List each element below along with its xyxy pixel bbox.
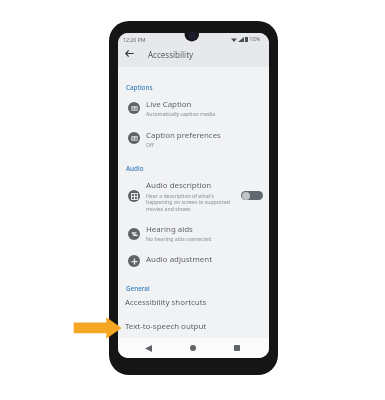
staticText: Audio adjustment (146, 254, 213, 265)
staticText: Audio (126, 164, 144, 173)
staticText: Live Caption (146, 99, 192, 110)
button[interactable]: Navigate up (121, 45, 138, 62)
staticText: Automatically caption media (146, 110, 216, 117)
staticText: Accessibility shortcuts (125, 297, 207, 308)
staticText: Captions (126, 83, 153, 92)
button[interactable]: Home (185, 340, 201, 356)
button[interactable]: Recent apps (229, 340, 245, 356)
staticText: 12:20 PM (123, 36, 146, 43)
staticText: Audio description (146, 180, 212, 191)
staticText: Hearing aids (146, 224, 193, 235)
staticText: No hearing aids connected (146, 235, 212, 242)
staticText: 100% (249, 36, 261, 42)
staticText: General (126, 284, 150, 293)
staticText: Accessibility (148, 49, 194, 60)
button[interactable]: Audio description toggle (241, 191, 263, 200)
button[interactable]: Back (140, 340, 156, 356)
staticText: Off (146, 141, 154, 148)
staticText: Text-to-speech output (125, 321, 207, 332)
staticText: Caption preferences (146, 130, 221, 141)
staticText: Hear a description of what's happening o… (146, 192, 231, 213)
